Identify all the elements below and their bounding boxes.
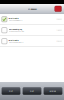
button[interactable]: Arkivér [44, 87, 62, 95]
staticText: 14-05-13 [56, 29, 62, 31]
button[interactable]: Multidata [0, 14, 64, 25]
staticText: Arkivér [49, 90, 56, 92]
button[interactable]: Multidata [0, 36, 64, 47]
button[interactable]: Delete [55, 6, 61, 12]
staticText: Multidata [9, 17, 19, 19]
button[interactable]: Flyt [2, 87, 20, 95]
button[interactable]: Slet [23, 87, 41, 95]
staticText: Multidata [9, 39, 19, 41]
staticText: Flyt [9, 90, 13, 92]
staticText: 22-04-13 [56, 40, 62, 42]
staticText: 22-05-13 [56, 18, 62, 20]
staticText: Feriekonto (FK) [9, 28, 23, 30]
staticText: Lønseddel april 2013 [9, 42, 24, 43]
button[interactable]: Feriekonto (FK) [0, 25, 64, 36]
staticText: Indbakke [27, 7, 36, 10]
staticText: Feriepengeoversigt [9, 31, 25, 32]
staticText: Slet [30, 90, 34, 92]
staticText: Lønseddel maj 2013 [9, 20, 23, 21]
